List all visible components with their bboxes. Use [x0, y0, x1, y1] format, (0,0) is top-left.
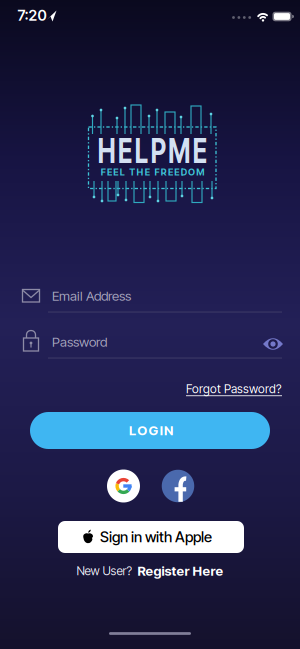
staticText: E [145, 166, 150, 178]
staticText: O [188, 166, 195, 178]
staticText: O [137, 422, 147, 438]
staticText: Email Address [52, 288, 131, 304]
staticText: E [174, 166, 179, 178]
staticText: N [164, 422, 173, 438]
staticText: P [150, 129, 171, 171]
staticText: M [196, 166, 204, 178]
staticText: Password [52, 334, 107, 350]
staticText: D [181, 166, 187, 178]
staticText: M [174, 129, 205, 171]
staticText: H [137, 166, 144, 178]
staticText: T [129, 166, 135, 178]
staticText: E [113, 166, 118, 178]
staticText: Sign in with Apple [100, 528, 212, 546]
staticText: Register Here [137, 563, 223, 579]
staticText: E [168, 166, 173, 178]
staticText: I [160, 422, 163, 438]
staticText: E [105, 129, 125, 171]
staticText: 7:20 [17, 7, 46, 24]
staticText: L [120, 166, 125, 178]
staticText: G [148, 422, 158, 438]
staticText: H [76, 129, 101, 171]
staticText: E [208, 129, 228, 171]
staticText: R [161, 166, 167, 178]
staticText: L [129, 422, 136, 438]
staticText: E [107, 166, 112, 178]
staticText: Forgot Password? [186, 382, 282, 396]
staticText: F [154, 166, 159, 178]
staticText: New User? [76, 564, 132, 578]
staticText: L [128, 129, 147, 171]
staticText: F [101, 166, 106, 178]
